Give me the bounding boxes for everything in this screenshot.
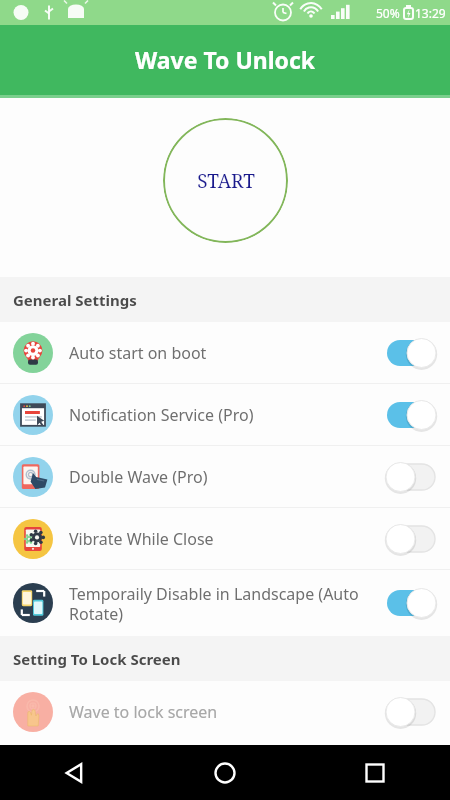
staticText: Wave to lock screen xyxy=(69,701,377,723)
staticText: Double Wave (Pro) xyxy=(69,466,377,488)
button[interactable]: Recent apps xyxy=(300,745,450,800)
button[interactable]: Back xyxy=(0,745,150,800)
staticText: Auto start on boot xyxy=(69,342,377,364)
button[interactable]: Toggle off xyxy=(385,697,437,727)
button[interactable]: Home xyxy=(150,745,300,800)
staticText: Setting To Lock Screen xyxy=(13,649,181,669)
staticText: Wave To Unlock xyxy=(135,44,316,75)
staticText: 13:29 xyxy=(415,5,446,21)
staticText: START xyxy=(197,168,255,194)
staticText: Vibrate While Close xyxy=(69,528,377,550)
button[interactable]: Double Wave (Pro) xyxy=(0,446,450,507)
button[interactable]: Toggle on xyxy=(385,400,437,430)
button[interactable]: Auto start on boot xyxy=(0,322,450,383)
button[interactable]: Wave to lock screen xyxy=(0,681,450,742)
staticText: Temporaily Disable in Landscape (Auto Ro… xyxy=(69,583,377,624)
button[interactable]: START xyxy=(163,118,288,243)
button[interactable]: Notification Service (Pro) xyxy=(0,384,450,445)
button[interactable]: Toggle on xyxy=(385,588,437,618)
button[interactable]: Temporaily Disable in Landscape (Auto Ro… xyxy=(0,570,450,636)
button[interactable]: Vibrate While Close xyxy=(0,508,450,569)
button[interactable]: Toggle off xyxy=(385,524,437,554)
button[interactable]: Toggle on xyxy=(385,338,437,368)
staticText: General Settings xyxy=(13,290,137,310)
staticText: 50% xyxy=(376,5,400,21)
button[interactable]: Toggle off xyxy=(385,462,437,492)
staticText: Notification Service (Pro) xyxy=(69,404,377,426)
